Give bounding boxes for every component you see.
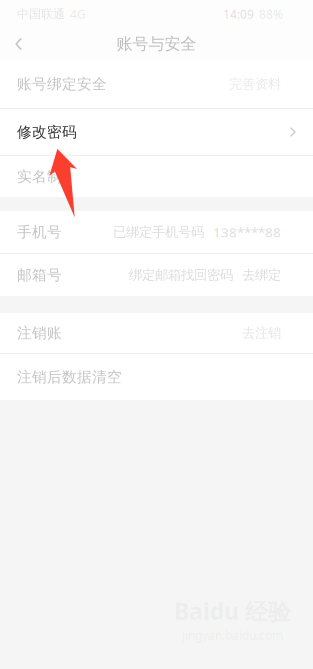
- button[interactable]: 注销账: [0, 313, 313, 353]
- staticText: 修改密码: [17, 123, 77, 141]
- staticText: 完善资料: [229, 76, 281, 92]
- staticText: 138****88: [213, 223, 281, 241]
- staticText: 14:09: [223, 6, 254, 22]
- staticText: Baidu 经验: [174, 596, 291, 626]
- staticText: 账号与安全: [116, 34, 196, 54]
- button[interactable]: 手机号: [0, 211, 313, 253]
- button[interactable]: 账号绑定安全: [0, 60, 313, 108]
- staticText: 账号绑定安全: [17, 75, 107, 93]
- staticText: 去绑定: [242, 267, 281, 283]
- button[interactable]: 邮箱号: [0, 254, 313, 296]
- staticText: 已绑定手机号码: [113, 224, 204, 240]
- staticText: 绑定邮箱找回密码: [129, 267, 233, 283]
- staticText: 88%: [259, 6, 283, 22]
- button[interactable]: 注销后数据清空: [0, 354, 313, 400]
- button[interactable]: Back: [0, 28, 36, 60]
- staticText: 去注销: [242, 325, 281, 341]
- staticText: 手机号: [17, 223, 62, 241]
- staticText: 邮箱号: [17, 266, 62, 284]
- button[interactable]: 修改密码: [0, 109, 313, 155]
- staticText: 4G: [70, 6, 86, 22]
- staticText: 中国联通: [17, 7, 65, 21]
- button[interactable]: 实名制: [0, 156, 313, 197]
- staticText: 实名制: [17, 167, 62, 185]
- staticText: 注销后数据清空: [17, 368, 122, 386]
- staticText: 注销账: [17, 324, 62, 342]
